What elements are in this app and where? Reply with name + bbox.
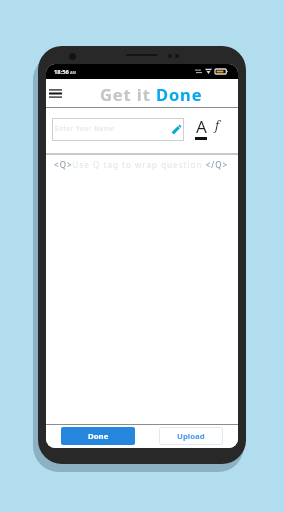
staticText: f	[215, 117, 219, 134]
staticText: <Q>Use Q tag to wrap question </Q>	[54, 159, 229, 170]
staticText: Enter Your Name	[55, 124, 115, 133]
staticText: Get it Done	[100, 83, 203, 105]
staticText: 18:56	[54, 68, 69, 76]
button[interactable]: Open navigation menu	[46, 82, 66, 104]
button[interactable]: Upload	[159, 427, 223, 445]
button[interactable]: Enter Your Name	[52, 118, 184, 141]
staticText: A	[196, 115, 207, 137]
button[interactable]: Italic	[211, 115, 223, 135]
staticText: AM	[70, 70, 76, 75]
button[interactable]: Done	[61, 427, 135, 445]
staticText: Upload	[177, 431, 205, 442]
staticText: Done	[88, 431, 109, 442]
button[interactable]: Text style	[193, 118, 209, 140]
